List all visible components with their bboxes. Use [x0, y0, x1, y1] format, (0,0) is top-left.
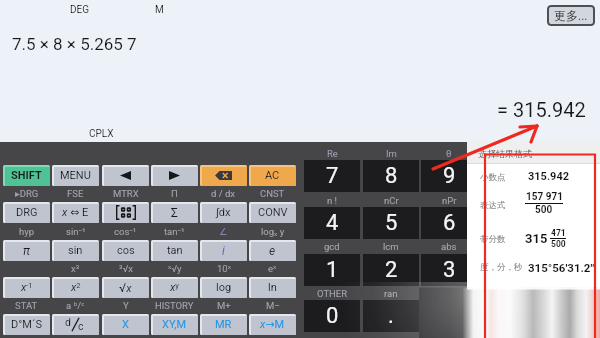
button[interactable]: .: [363, 300, 419, 332]
staticText: 315.942: [528, 170, 570, 183]
staticText: ³√x: [119, 263, 133, 274]
staticText: 7: [326, 163, 339, 189]
staticText: Im: [386, 148, 397, 159]
button[interactable]: tan: [151, 240, 198, 261]
staticText: 10ˣ: [217, 262, 231, 275]
staticText: hyp: [19, 226, 35, 237]
staticText: abs: [441, 241, 457, 252]
staticText: M−: [266, 300, 280, 311]
button[interactable]: Matrix: [102, 202, 149, 223]
button[interactable]: AC: [249, 165, 296, 186]
staticText: XY,M: [162, 318, 187, 331]
staticText: 5: [385, 210, 398, 236]
button[interactable]: sin: [52, 240, 99, 261]
button[interactable]: log: [200, 277, 247, 298]
button[interactable]: 1: [304, 254, 360, 286]
staticText: θ: [446, 148, 452, 159]
button[interactable]: 0: [304, 300, 360, 332]
staticText: CNST: [260, 188, 285, 199]
button[interactable]: d: [52, 314, 99, 335]
button[interactable]: 8: [363, 160, 419, 192]
button[interactable]: D°M´S: [3, 314, 50, 335]
staticText: OTHER: [317, 288, 348, 299]
button[interactable]: x2: [52, 277, 99, 298]
staticText: 500: [535, 204, 553, 216]
staticText: x ⇔ E: [62, 206, 89, 219]
staticText: X: [122, 318, 129, 331]
button[interactable]: i: [200, 240, 247, 261]
staticText: 500: [551, 239, 566, 249]
button[interactable]: 2: [363, 254, 419, 286]
button[interactable]: X: [102, 314, 149, 335]
staticText: a ᵇ/ᶜ: [66, 299, 85, 312]
button[interactable]: CONV: [249, 202, 296, 223]
staticText: cos: [117, 244, 135, 257]
staticText: x-1: [21, 281, 33, 294]
staticText: CPLX: [89, 128, 114, 140]
button[interactable]: 9: [421, 160, 477, 192]
button[interactable]: 5: [363, 207, 419, 239]
staticText: 315.942 × 8: [528, 286, 587, 299]
button[interactable]: cos: [102, 240, 149, 261]
button[interactable]: SHIFT: [3, 165, 50, 186]
button[interactable]: 更多...: [547, 5, 595, 26]
staticText: 157 971: [526, 191, 563, 203]
staticText: Π: [171, 188, 178, 199]
button[interactable]: Move cursor right: [151, 165, 198, 186]
staticText: π: [23, 244, 30, 258]
staticText: AC: [265, 169, 280, 182]
staticText: cos⁻¹: [114, 226, 137, 237]
button[interactable]: e: [249, 240, 296, 261]
staticText: x2: [71, 281, 81, 294]
button[interactable]: xy: [151, 277, 198, 298]
staticText: 小数点: [480, 172, 506, 183]
staticText: 更多...: [554, 8, 588, 23]
button[interactable]: 3: [421, 254, 477, 286]
staticText: 1: [326, 257, 339, 283]
button[interactable]: 7: [304, 160, 360, 192]
staticText: ∠: [219, 226, 228, 237]
button[interactable]: π: [3, 240, 50, 261]
staticText: 2: [385, 257, 398, 283]
button[interactable]: [421, 300, 477, 332]
staticText: √x: [119, 281, 132, 295]
staticText: 0: [326, 303, 339, 329]
staticText: d: [65, 316, 71, 328]
staticText: 471: [551, 228, 566, 238]
button[interactable]: MENU: [52, 165, 99, 186]
button[interactable]: Σ: [151, 202, 198, 223]
staticText: = 315.942: [497, 98, 586, 121]
staticText: d / dx: [211, 188, 236, 199]
button[interactable]: Move cursor left: [102, 165, 149, 186]
staticText: sin⁻¹: [66, 226, 86, 237]
staticText: MENU: [60, 169, 91, 182]
staticText: M: [155, 4, 164, 16]
staticText: logₓ y: [261, 225, 285, 238]
staticText: 选择结果格式: [478, 148, 532, 159]
staticText: x³: [71, 263, 80, 274]
button[interactable]: ln: [249, 277, 296, 298]
button[interactable]: DRG: [3, 202, 50, 223]
button[interactable]: √x: [102, 277, 149, 298]
staticText: 3: [443, 257, 456, 283]
staticText: MTRX: [113, 188, 139, 199]
staticText: Σ: [171, 206, 178, 220]
button[interactable]: Backspace: [200, 165, 247, 186]
button[interactable]: ∫dx: [200, 202, 247, 223]
button[interactable]: MR: [200, 314, 247, 335]
staticText: x→M: [260, 318, 285, 331]
button[interactable]: 6: [421, 207, 477, 239]
staticText: 其它形式: [480, 288, 514, 299]
staticText: 6: [443, 210, 456, 236]
staticText: .: [388, 303, 394, 329]
button[interactable]: x-1: [3, 277, 50, 298]
staticText: CONV: [258, 206, 288, 219]
staticText: 带分数: [480, 234, 506, 245]
button[interactable]: XY,M: [151, 314, 198, 335]
button[interactable]: x→M: [249, 314, 296, 335]
button[interactable]: x ⇔ E: [52, 202, 99, 223]
staticText: ∫dx: [216, 206, 231, 219]
button[interactable]: 4: [304, 207, 360, 239]
staticText: ˣ√y: [168, 262, 182, 275]
staticText: 度，分，秒: [480, 262, 523, 273]
